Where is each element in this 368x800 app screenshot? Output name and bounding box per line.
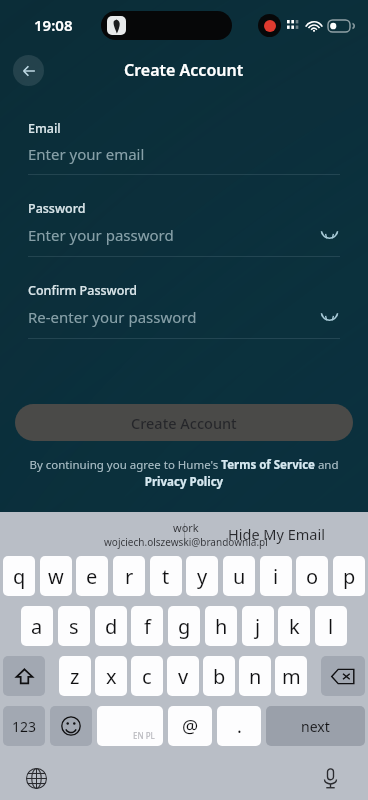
button[interactable]: w — [40, 556, 72, 596]
staticText: c — [142, 663, 152, 690]
button[interactable]: s — [58, 606, 90, 646]
staticText: Create Account — [131, 413, 237, 433]
staticText: y — [197, 563, 208, 590]
button[interactable]: Change keyboard — [20, 762, 52, 794]
staticText: s — [69, 613, 79, 640]
button[interactable]: u — [223, 556, 255, 596]
staticText: Email — [28, 120, 61, 137]
button[interactable]: g — [168, 606, 200, 646]
staticText: Create Account — [124, 59, 244, 81]
button[interactable]: Confirm Password — [28, 282, 340, 339]
button[interactable]: o — [296, 556, 328, 596]
staticText: Confirm Password — [28, 282, 138, 299]
button[interactable]: j — [242, 606, 274, 646]
staticText: o — [306, 563, 319, 590]
button[interactable]: Space — [97, 706, 163, 746]
button[interactable]: i — [260, 556, 292, 596]
button[interactable]: Password — [28, 200, 340, 257]
button[interactable]: @ — [168, 706, 212, 746]
button[interactable]: r — [113, 556, 145, 596]
button[interactable]: Back — [13, 55, 44, 86]
staticText: i — [273, 563, 279, 590]
button[interactable]: Shift — [3, 656, 45, 696]
button[interactable]: x — [95, 656, 127, 696]
staticText: x — [106, 663, 117, 690]
staticText: g — [178, 613, 191, 640]
button[interactable]: 123 — [3, 706, 45, 746]
button[interactable]: a — [21, 606, 53, 646]
staticText: . — [237, 714, 242, 739]
staticText: Enter your password — [28, 225, 318, 245]
button[interactable]: Create Account — [15, 404, 353, 441]
button[interactable]: Hide My Email — [184, 524, 368, 544]
staticText: e — [86, 563, 98, 590]
staticText: m — [282, 663, 301, 690]
staticText: j — [255, 613, 261, 640]
staticText: z — [70, 663, 80, 690]
button[interactable]: Emoji — [50, 706, 92, 746]
staticText: d — [105, 613, 118, 640]
button[interactable]: v — [167, 656, 199, 696]
staticText: u — [233, 563, 246, 590]
staticText: 19:08 — [34, 15, 73, 35]
staticText: r — [125, 563, 134, 590]
staticText: a — [31, 613, 43, 640]
button[interactable]: q — [3, 556, 35, 596]
staticText: v — [178, 663, 189, 690]
button[interactable]: f — [131, 606, 163, 646]
button[interactable]: Backspace — [321, 656, 365, 696]
button[interactable]: Dictation — [314, 762, 346, 794]
button[interactable]: By continuing you agree to Hume's Terms … — [22, 457, 346, 490]
button[interactable]: e — [76, 556, 108, 596]
staticText: wojciech.olszewski@brandownia.pl — [104, 535, 268, 549]
staticText: w — [48, 563, 64, 590]
button[interactable]: Show password — [318, 306, 340, 328]
staticText: h — [215, 613, 228, 640]
staticText: b — [213, 663, 226, 690]
button[interactable]: Show password — [318, 224, 340, 246]
staticText: 123 — [12, 717, 37, 736]
button[interactable]: b — [203, 656, 235, 696]
staticText: n — [249, 663, 262, 690]
button[interactable]: m — [275, 656, 307, 696]
staticText: f — [144, 613, 151, 640]
staticText: l — [328, 613, 334, 640]
button[interactable]: Email — [28, 120, 340, 175]
staticText: Hide My Email — [228, 524, 325, 544]
staticText: work — [173, 520, 199, 535]
staticText: Password — [28, 200, 86, 217]
button[interactable]: next — [266, 706, 365, 746]
button[interactable]: . — [217, 706, 261, 746]
button[interactable]: h — [205, 606, 237, 646]
button[interactable]: p — [333, 556, 365, 596]
staticText: Re-enter your password — [28, 307, 318, 327]
staticText: EN PL — [133, 730, 155, 741]
staticText: By continuing you agree to Hume's Terms … — [22, 457, 346, 490]
button[interactable]: k — [278, 606, 310, 646]
staticText: t — [162, 563, 170, 590]
staticText: k — [289, 613, 300, 640]
staticText: Enter your email — [28, 144, 340, 164]
button[interactable]: y — [186, 556, 218, 596]
button[interactable]: c — [131, 656, 163, 696]
button[interactable]: d — [95, 606, 127, 646]
staticText: @ — [182, 714, 199, 739]
button[interactable]: n — [239, 656, 271, 696]
staticText: q — [13, 563, 26, 590]
button[interactable]: z — [59, 656, 91, 696]
button[interactable]: t — [150, 556, 182, 596]
staticText: next — [301, 717, 330, 736]
staticText: p — [343, 563, 356, 590]
button[interactable]: l — [315, 606, 347, 646]
